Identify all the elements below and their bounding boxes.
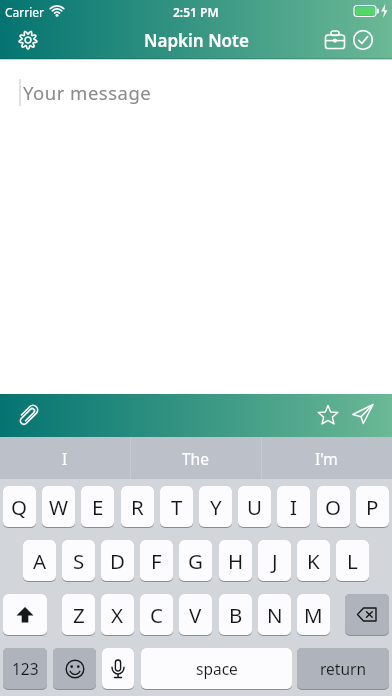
staticText: L xyxy=(347,547,358,575)
staticText: 2:51 PM xyxy=(173,4,219,20)
button[interactable]: X xyxy=(101,594,134,635)
staticText: W xyxy=(49,493,69,521)
button[interactable]: L xyxy=(336,540,369,581)
staticText: return xyxy=(320,658,366,679)
button[interactable]: 123 xyxy=(3,648,47,689)
button[interactable]: W xyxy=(42,486,75,527)
staticText: Carrier xyxy=(5,4,45,20)
button[interactable]: F xyxy=(140,540,173,581)
button[interactable]: U xyxy=(238,486,271,527)
staticText: Q xyxy=(11,493,28,521)
staticText: P xyxy=(366,493,379,521)
button[interactable]: I'm xyxy=(261,437,392,479)
button[interactable]: E xyxy=(81,486,114,527)
button[interactable] xyxy=(345,594,389,635)
staticText: The xyxy=(182,448,209,469)
staticText: I xyxy=(62,448,68,469)
button[interactable]: T xyxy=(160,486,193,527)
button[interactable]: Y xyxy=(199,486,232,527)
staticText: I xyxy=(290,493,297,521)
button[interactable]: Q xyxy=(3,486,36,527)
staticText: A xyxy=(33,547,47,575)
staticText: Z xyxy=(73,601,85,629)
staticText: G xyxy=(188,547,203,575)
button[interactable] xyxy=(321,26,349,54)
staticText: I'm xyxy=(315,448,338,469)
button[interactable]: S xyxy=(62,540,95,581)
staticText: B xyxy=(229,601,243,629)
button[interactable]: D xyxy=(101,540,134,581)
button[interactable] xyxy=(315,402,341,428)
staticText: E xyxy=(92,493,104,521)
staticText: M xyxy=(304,601,323,629)
staticText: Y xyxy=(210,493,222,521)
button[interactable] xyxy=(14,26,42,54)
button[interactable]: B xyxy=(219,594,252,635)
button[interactable] xyxy=(14,401,42,429)
button[interactable]: K xyxy=(297,540,330,581)
staticText: K xyxy=(307,547,320,575)
staticText: N xyxy=(267,601,283,629)
button[interactable]: A xyxy=(23,540,56,581)
button[interactable] xyxy=(53,648,96,689)
button[interactable]: M xyxy=(297,594,330,635)
button[interactable]: return xyxy=(297,648,389,689)
button[interactable]: I xyxy=(277,486,310,527)
staticText: 123 xyxy=(12,658,39,679)
staticText: U xyxy=(247,493,262,521)
staticText: R xyxy=(131,493,144,521)
staticText: X xyxy=(111,601,124,629)
button[interactable] xyxy=(102,648,134,689)
button[interactable]: I xyxy=(0,437,130,479)
button[interactable]: O xyxy=(317,486,350,527)
staticText: S xyxy=(73,547,85,575)
button[interactable] xyxy=(349,26,377,54)
staticText: space xyxy=(196,658,238,679)
staticText: V xyxy=(189,601,202,629)
button[interactable]: G xyxy=(179,540,212,581)
staticText: T xyxy=(171,493,183,521)
staticText: O xyxy=(325,493,342,521)
button[interactable]: N xyxy=(258,594,291,635)
staticText: D xyxy=(110,547,125,575)
staticText: F xyxy=(151,547,162,575)
button[interactable]: R xyxy=(121,486,154,527)
button[interactable]: H xyxy=(219,540,252,581)
staticText: Your message xyxy=(23,80,152,105)
button[interactable]: J xyxy=(258,540,291,581)
button[interactable]: space xyxy=(141,648,292,689)
button[interactable] xyxy=(350,401,376,427)
staticText: Napkin Note xyxy=(144,29,249,52)
button[interactable] xyxy=(3,594,47,635)
staticText: C xyxy=(150,601,163,629)
staticText: J xyxy=(272,547,278,575)
button[interactable]: Z xyxy=(62,594,95,635)
button[interactable]: P xyxy=(356,486,389,527)
staticText: H xyxy=(228,547,244,575)
button[interactable]: V xyxy=(179,594,212,635)
button[interactable]: C xyxy=(140,594,173,635)
button[interactable]: The xyxy=(130,437,261,479)
